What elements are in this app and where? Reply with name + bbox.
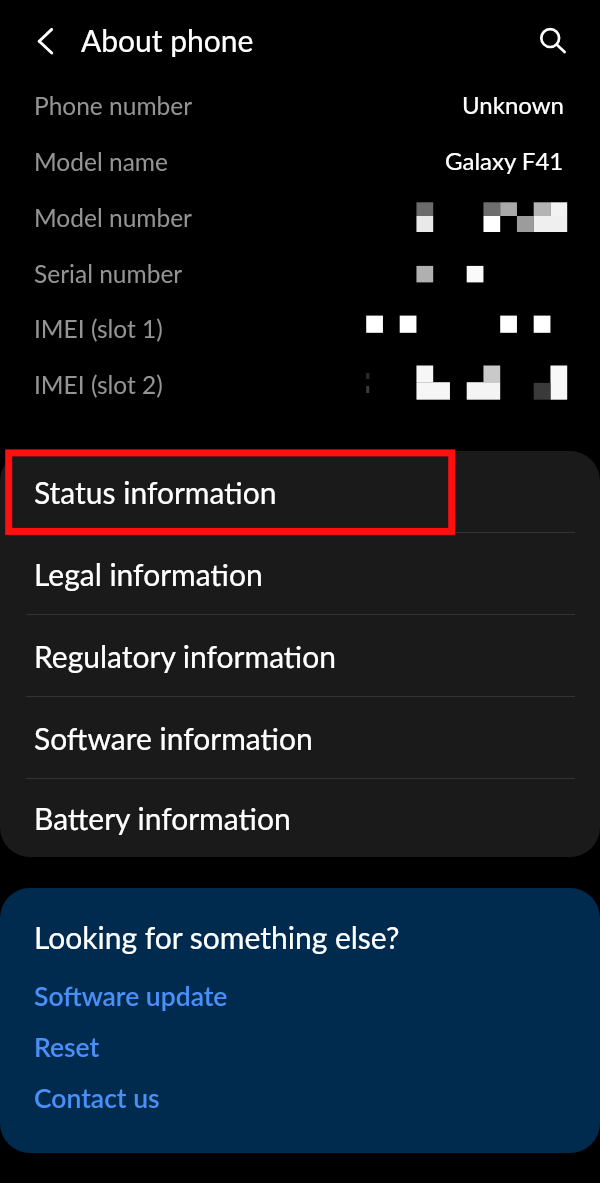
staticText: Contact us bbox=[34, 1082, 160, 1114]
button[interactable]: Battery information bbox=[0, 779, 600, 857]
button[interactable]: Reset bbox=[34, 1031, 100, 1063]
button[interactable]: Model name bbox=[0, 134, 600, 190]
staticText: IMEI (slot 2) bbox=[34, 370, 163, 399]
staticText: Model name bbox=[34, 147, 168, 176]
button[interactable]: Phone number bbox=[0, 78, 600, 134]
button[interactable]: Search bbox=[524, 12, 576, 64]
staticText: Galaxy F41 bbox=[445, 146, 564, 175]
button[interactable]: Software update bbox=[34, 980, 228, 1012]
staticText: Reset bbox=[34, 1031, 100, 1063]
button[interactable]: Contact us bbox=[34, 1082, 160, 1114]
staticText: IMEI (slot 1) bbox=[34, 314, 163, 343]
staticText: Serial number bbox=[34, 259, 183, 288]
staticText: Unknown bbox=[462, 90, 564, 119]
staticText: Software information bbox=[34, 720, 313, 756]
staticText: Model number bbox=[34, 203, 193, 232]
staticText: Status information bbox=[34, 474, 277, 510]
button[interactable]: Back bbox=[18, 14, 70, 66]
button[interactable]: Regulatory information bbox=[0, 615, 600, 696]
button[interactable]: Software information bbox=[0, 697, 600, 778]
button[interactable]: Status information bbox=[0, 451, 600, 532]
staticText: About phone bbox=[81, 22, 254, 58]
staticText: Legal information bbox=[34, 556, 263, 592]
button[interactable]: IMEI (slot 2) bbox=[0, 357, 600, 413]
staticText: Regulatory information bbox=[34, 638, 337, 674]
staticText: Software update bbox=[34, 980, 228, 1012]
staticText: Looking for something else? bbox=[34, 919, 400, 955]
button[interactable]: IMEI (slot 1) bbox=[0, 301, 600, 357]
staticText: Phone number bbox=[34, 91, 193, 120]
button[interactable]: Model number bbox=[0, 190, 600, 246]
button[interactable]: Legal information bbox=[0, 533, 600, 614]
staticText: Battery information bbox=[34, 800, 291, 836]
button[interactable]: Serial number bbox=[0, 246, 600, 302]
